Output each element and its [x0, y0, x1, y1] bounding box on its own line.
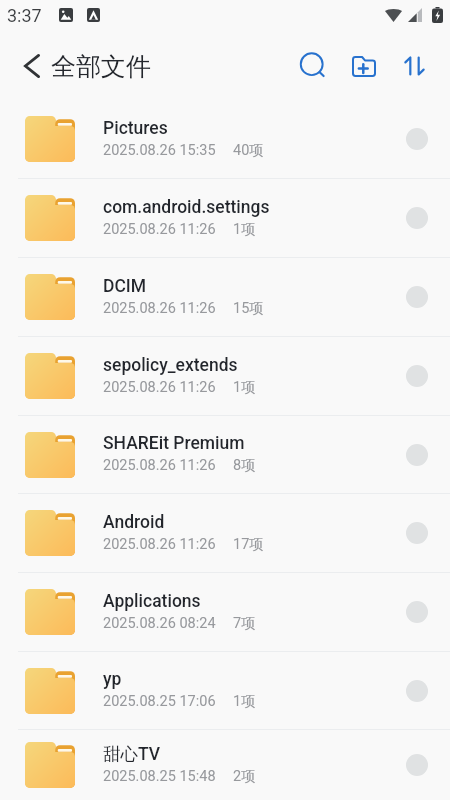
staticText: 2025.08.25 17:06 [103, 693, 216, 710]
staticText: yp [103, 669, 122, 690]
button[interactable]: New folder [346, 48, 382, 84]
staticText: 2025.08.25 15:48 [103, 768, 216, 785]
staticText: 2025.08.26 11:26 [103, 536, 216, 553]
button[interactable]: Android [0, 494, 450, 572]
staticText: com.android.settings [103, 197, 270, 218]
button[interactable]: sepolicy_extends [0, 337, 450, 415]
button[interactable]: Select item [400, 595, 434, 629]
staticText: 全部文件 [51, 51, 151, 82]
button[interactable]: Select item [400, 359, 434, 393]
button[interactable]: Applications [0, 573, 450, 651]
staticText: 1项 [233, 378, 256, 396]
staticText: 2025.08.26 15:35 [103, 142, 216, 159]
button[interactable]: Search [295, 48, 331, 84]
staticText: 3:37 [7, 5, 42, 26]
button[interactable]: Select item [400, 122, 434, 156]
staticText: 2025.08.26 11:26 [103, 457, 216, 474]
staticText: Pictures [103, 118, 168, 139]
staticText: 2025.08.26 11:26 [103, 379, 216, 396]
button[interactable]: Select item [400, 438, 434, 472]
button[interactable]: Select item [400, 674, 434, 708]
staticText: 2025.08.26 11:26 [103, 300, 216, 317]
staticText: Applications [103, 591, 201, 612]
button[interactable]: com.android.settings [0, 179, 450, 257]
staticText: 40项 [233, 141, 264, 159]
staticText: Android [103, 512, 165, 533]
staticText: 15项 [233, 299, 264, 317]
staticText: 17项 [233, 535, 264, 553]
button[interactable]: Select item [400, 280, 434, 314]
button[interactable]: Select item [400, 201, 434, 235]
button[interactable]: Back [16, 45, 48, 87]
staticText: 1项 [233, 692, 256, 710]
button[interactable]: Select item [400, 748, 434, 782]
staticText: sepolicy_extends [103, 355, 238, 376]
staticText: 8项 [233, 456, 256, 474]
button[interactable]: DCIM [0, 258, 450, 336]
button[interactable]: Sort [396, 48, 432, 84]
staticText: 2025.08.26 11:26 [103, 221, 216, 238]
staticText: SHAREit Premium [103, 433, 245, 454]
staticText: 7项 [233, 614, 256, 632]
staticText: 2025.08.26 08:24 [103, 615, 216, 632]
button[interactable]: SHAREit Premium [0, 416, 450, 493]
button[interactable]: 甜心TV [0, 730, 450, 800]
staticText: 甜心TV [103, 743, 161, 765]
staticText: 2项 [233, 767, 256, 785]
staticText: DCIM [103, 276, 147, 297]
button[interactable]: Pictures [0, 100, 450, 178]
staticText: 1项 [233, 220, 256, 238]
button[interactable]: yp [0, 652, 450, 729]
button[interactable]: Select item [400, 516, 434, 550]
